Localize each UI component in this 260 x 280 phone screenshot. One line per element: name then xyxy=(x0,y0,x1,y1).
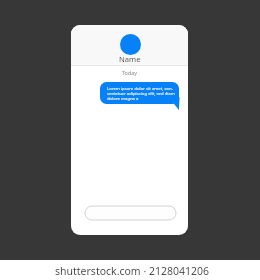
button[interactable]: Message input field xyxy=(85,206,176,220)
button[interactable]: Name xyxy=(119,54,141,64)
button[interactable]: Lorem ipsum dolor sit amet, con- sectetu… xyxy=(100,82,179,104)
button[interactable]: Profile avatar xyxy=(120,34,141,55)
staticText: shutterstock.com · 2128041206 xyxy=(55,264,210,278)
staticText: Today xyxy=(122,69,137,76)
staticText: Lorem ipsum dolor sit amet, con- sectetu… xyxy=(107,85,175,101)
